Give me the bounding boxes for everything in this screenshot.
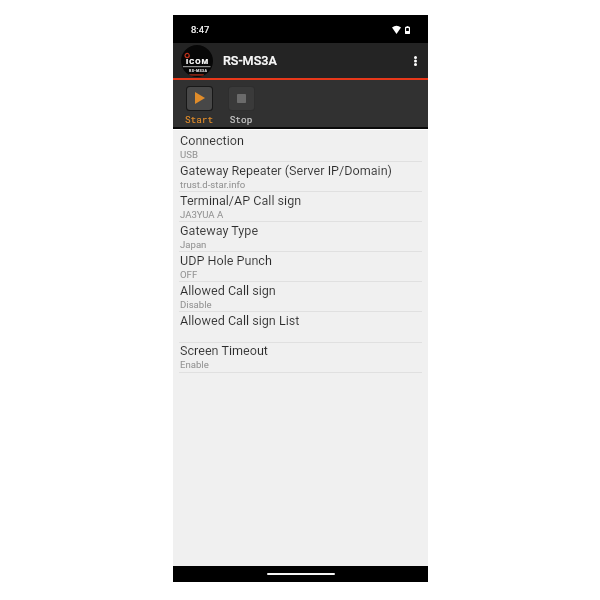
button[interactable]: Terminal/AP Call sign [173, 192, 428, 222]
staticText: 8:47 [191, 24, 210, 35]
staticText: Gateway Type [180, 223, 259, 238]
button[interactable]: Allowed Call sign List [173, 312, 428, 342]
button[interactable]: Gateway Type [173, 222, 428, 252]
staticText: Terminal/AP Call sign [180, 193, 302, 208]
button[interactable]: Connection [173, 132, 428, 162]
staticText: ICOM [186, 57, 210, 66]
staticText: Connection [180, 133, 244, 148]
button[interactable]: Stop [219, 86, 263, 130]
staticText: OFF [180, 269, 198, 280]
staticText: JA3YUA A [180, 209, 224, 220]
button[interactable]: UDP Hole Punch [173, 252, 428, 282]
staticText: RS-MS3A [189, 69, 208, 73]
button[interactable]: Gateway Repeater (Server IP/Domain) [173, 162, 428, 192]
button[interactable]: More options [402, 48, 428, 74]
staticText: Gateway Repeater (Server IP/Domain) [180, 163, 393, 178]
staticText: Japan [180, 239, 207, 250]
button[interactable]: Screen Timeout [173, 342, 428, 372]
staticText: Stop [219, 113, 263, 125]
staticText: Allowed Call sign [180, 283, 276, 298]
staticText: Disable [180, 299, 212, 310]
staticText: UDP Hole Punch [180, 253, 272, 268]
staticText: USB [180, 149, 198, 160]
staticText: Allowed Call sign List [180, 313, 300, 328]
button[interactable]: Allowed Call sign [173, 282, 428, 312]
staticText: Screen Timeout [180, 343, 268, 358]
staticText: Enable [180, 359, 209, 370]
staticText: RS-MS3A [223, 53, 277, 68]
staticText: Start [177, 113, 221, 125]
staticText: trust.d-star.info [180, 179, 246, 190]
button[interactable]: Start [177, 86, 221, 130]
